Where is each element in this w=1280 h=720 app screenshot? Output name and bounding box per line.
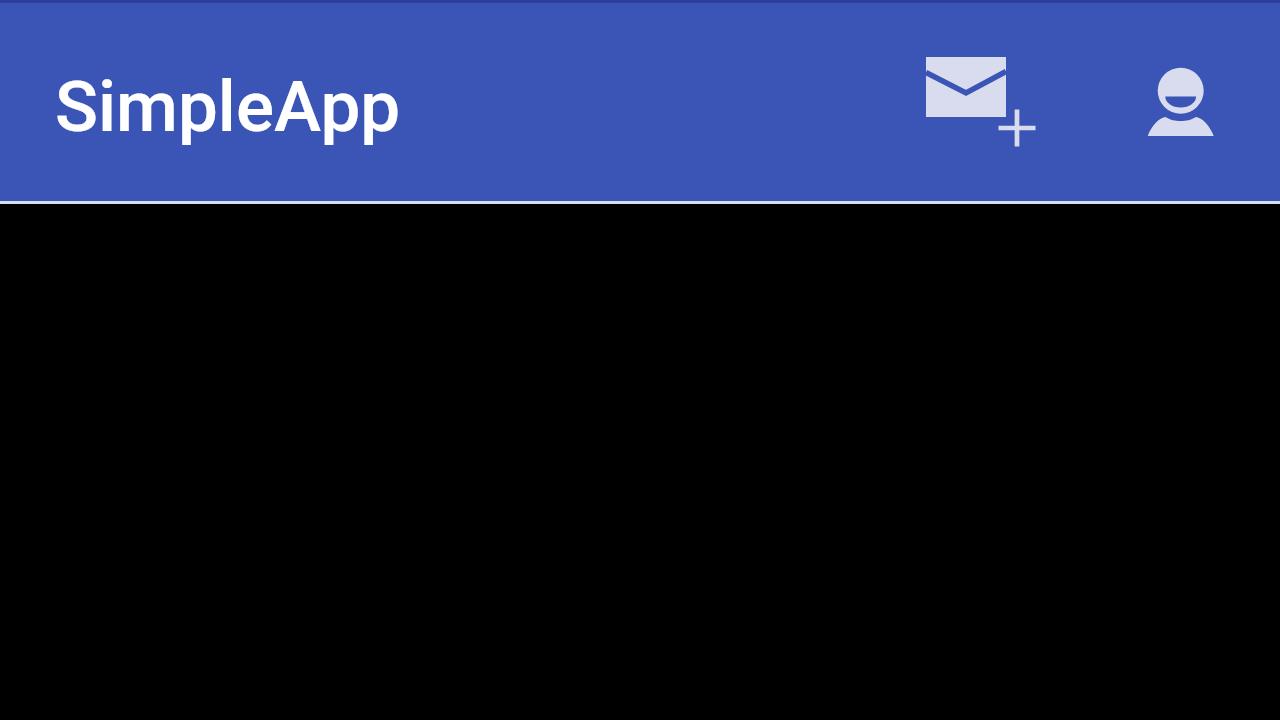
button[interactable]: Account <box>1140 60 1222 142</box>
button[interactable]: Compose new mail <box>902 33 1050 151</box>
staticText: SimpleApp <box>55 65 401 148</box>
